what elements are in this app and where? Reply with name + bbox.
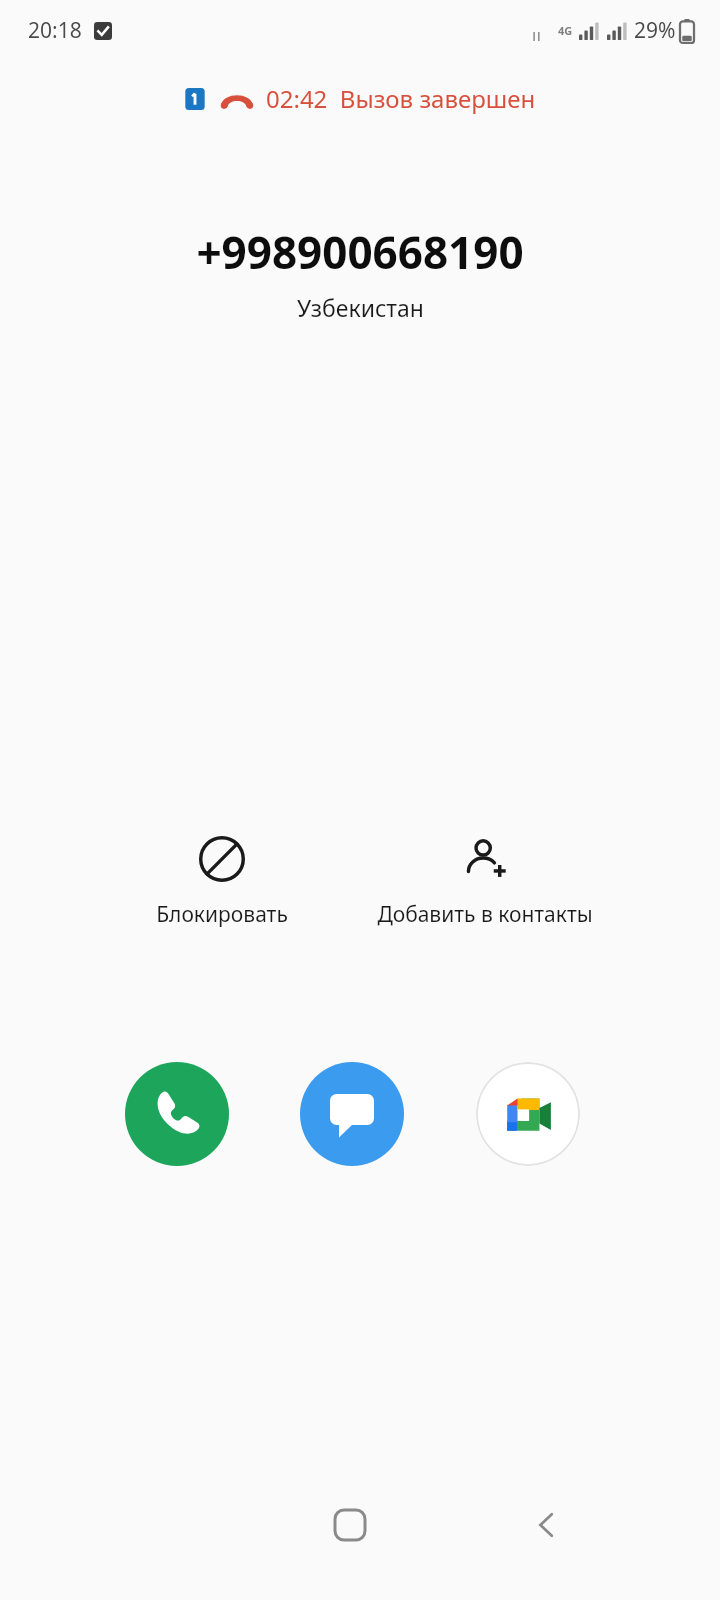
staticText: 20:18 [28,16,82,45]
staticText: Узбекистан [297,292,424,323]
staticText: 29% [634,16,676,45]
button[interactable]: Добавить в контакты [355,832,615,933]
button[interactable]: Call [125,1062,229,1166]
button[interactable]: Video call [476,1062,580,1166]
button[interactable]: Message [300,1062,404,1166]
staticText: +998900668190 [196,222,524,282]
button[interactable]: Блокировать [142,832,302,933]
staticText: Добавить в контакты [377,900,593,929]
staticText: Блокировать [156,900,288,929]
staticText: 4G [558,23,573,38]
button[interactable]: Back [511,1489,583,1561]
staticText: 02:42 Вызов завершен [266,82,536,115]
button[interactable]: Home [314,1489,386,1561]
